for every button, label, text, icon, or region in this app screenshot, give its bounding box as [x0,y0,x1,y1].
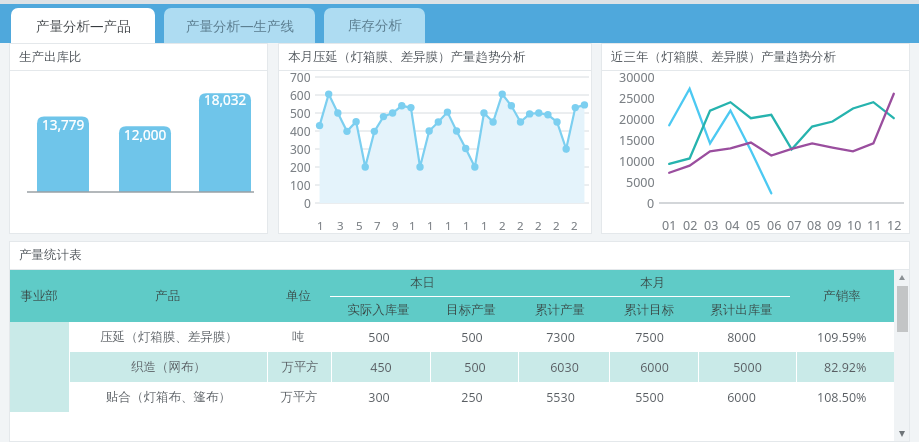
staticText: 5000 [733,359,762,376]
staticText: 产销率 [823,288,861,304]
staticText: 6000 [640,359,669,376]
staticText: 04 [725,217,740,234]
staticText: 累计出库量 [710,302,773,318]
staticText: 万平方 [281,359,319,375]
staticText: 05 [746,217,761,234]
staticText: 27 [553,218,562,234]
staticText: 本月 [640,275,665,291]
staticText: 500 [368,329,390,346]
staticText: 06 [767,217,782,234]
staticText: 压延（灯箱膜、差异膜） [100,329,238,345]
button[interactable]: 产量分析—生产线 [164,8,315,43]
staticText: 82.92% [824,359,867,376]
staticText: 生产出库比 [19,49,82,65]
staticText: 11 [409,218,418,234]
staticText: 产量分析—生产线 [186,17,294,35]
staticText: 08 [807,217,822,234]
staticText: 织造（网布） [131,359,206,375]
staticText: 13,779 [42,116,85,134]
staticText: 400 [290,123,311,139]
staticText: 6000 [727,389,756,406]
staticText: 9 [392,218,399,234]
staticText: 300 [368,389,390,406]
staticText: 累计目标 [624,302,674,318]
staticText: 15 [445,218,454,234]
staticText: 7500 [635,329,664,346]
staticText: 10000 [619,153,655,170]
staticText: 29 [571,218,580,234]
staticText: 事业部 [20,288,58,304]
staticText: 1 [317,218,324,234]
staticText: 18,032 [204,91,247,109]
staticText: 19 [481,218,490,234]
staticText: 500 [464,359,486,376]
staticText: 5530 [546,389,575,406]
staticText: 目标产量 [446,302,496,318]
staticText: 700 [290,69,311,85]
staticText: 109.59% [817,329,867,346]
staticText: 12 [887,217,902,234]
staticText: 02 [683,217,698,234]
staticText: 15000 [619,132,655,149]
staticText: 本日 [410,275,435,291]
button[interactable]: 压延（灯箱膜、差异膜） [9,322,894,352]
staticText: 21 [499,218,508,234]
staticText: 500 [461,329,483,346]
staticText: 11 [867,217,882,234]
staticText: 200 [290,159,311,175]
button[interactable]: 库存分析 [324,8,425,43]
staticText: 7300 [546,329,575,346]
staticText: 5500 [635,389,664,406]
staticText: 实际入库量 [347,302,410,318]
staticText: 吨 [292,329,305,345]
staticText: 贴合（灯箱布、篷布） [106,389,231,405]
staticText: 0 [304,195,311,211]
staticText: 本月压延（灯箱膜、差异膜）产量趋势分析 [288,49,526,65]
staticText: 产品 [155,288,180,304]
staticText: 30000 [619,69,655,86]
staticText: 17 [463,218,472,234]
staticText: 25000 [619,90,655,107]
staticText: 03 [704,217,719,234]
staticText: 近三年（灯箱膜、差异膜）产量趋势分析 [611,49,836,65]
staticText: 产量分析—产品 [36,17,131,35]
staticText: 600 [290,87,311,103]
staticText: 0 [647,195,655,212]
staticText: 3 [337,218,344,234]
button[interactable]: Scroll up [894,270,910,286]
button[interactable]: 织造（网布） [9,352,894,382]
staticText: 500 [290,105,311,121]
staticText: 产量统计表 [19,247,82,263]
button[interactable]: 产量分析—产品 [11,8,155,43]
staticText: 01 [662,217,677,234]
staticText: 23 [517,218,526,234]
staticText: 250 [461,389,483,406]
staticText: 5 [356,218,363,234]
staticText: 6030 [550,359,579,376]
button[interactable]: Scroll down [894,426,910,442]
staticText: 5000 [626,174,655,191]
staticText: 7 [374,218,381,234]
staticText: 8000 [727,329,756,346]
staticText: 万平方 [280,389,318,405]
staticText: 13 [427,218,436,234]
staticText: 单位 [286,288,311,304]
staticText: 07 [787,217,802,234]
staticText: 累计产量 [535,302,585,318]
staticText: 108.50% [817,389,867,406]
staticText: 100 [290,177,311,193]
staticText: 12,000 [124,126,167,144]
staticText: 20000 [619,111,655,128]
staticText: 450 [370,359,392,376]
staticText: 300 [290,141,311,157]
staticText: 10 [847,217,862,234]
button[interactable]: 贴合（灯箱布、篷布） [9,382,894,412]
staticText: 25 [535,218,544,234]
staticText: 09 [827,217,842,234]
staticText: 库存分析 [348,17,402,34]
